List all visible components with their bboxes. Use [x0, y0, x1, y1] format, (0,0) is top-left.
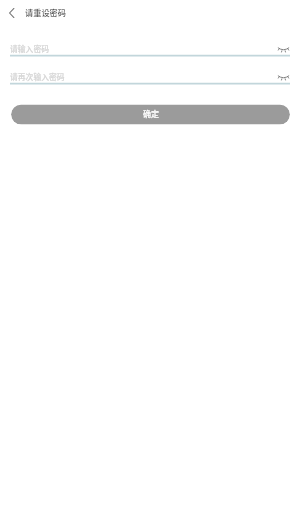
- button[interactable]: 确定: [11, 104, 290, 125]
- staticText: 请重设密码: [25, 6, 66, 18]
- staticText: 请输入密码: [10, 43, 49, 54]
- staticText: 确定: [143, 108, 159, 120]
- button[interactable]: Toggle password visibility: [273, 42, 293, 56]
- button[interactable]: Back: [1, 2, 23, 24]
- staticText: 请再次输入密码: [10, 71, 65, 82]
- button[interactable]: Toggle password visibility: [273, 70, 293, 84]
- button[interactable]: [10, 43, 272, 57]
- button[interactable]: [10, 71, 272, 85]
